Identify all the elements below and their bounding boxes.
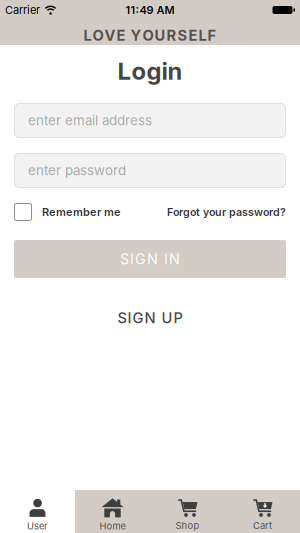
staticText: enter email address [28, 112, 152, 128]
button[interactable]: S I G N I N [14, 240, 286, 278]
staticText: S I G N U P [117, 309, 182, 327]
button[interactable]: Remember me [14, 203, 121, 221]
staticText: User [27, 520, 48, 532]
staticText: Shop [175, 520, 199, 531]
button[interactable]: S I G N U P [117, 309, 182, 327]
button[interactable]: Home [75, 490, 150, 533]
button[interactable]: Cart [225, 490, 300, 533]
staticText: Login [117, 56, 182, 85]
button[interactable]: User [0, 490, 75, 533]
staticText: Carrier [5, 3, 40, 17]
button[interactable]: Forgot your password? [167, 205, 286, 218]
staticText: Remember me [42, 205, 121, 219]
staticText: Cart [253, 520, 272, 531]
button[interactable]: Shop [150, 490, 225, 533]
staticText: Home [99, 520, 125, 532]
staticText: 11:49 AM [125, 3, 174, 17]
staticText: S I G N I N [120, 250, 180, 268]
button[interactable]: enter password [14, 153, 286, 188]
button[interactable]: enter email address [14, 103, 286, 138]
staticText: enter password [28, 162, 126, 178]
staticText: L O V E Y O U R S E L F [83, 27, 216, 44]
staticText: Forgot your password? [167, 205, 286, 218]
